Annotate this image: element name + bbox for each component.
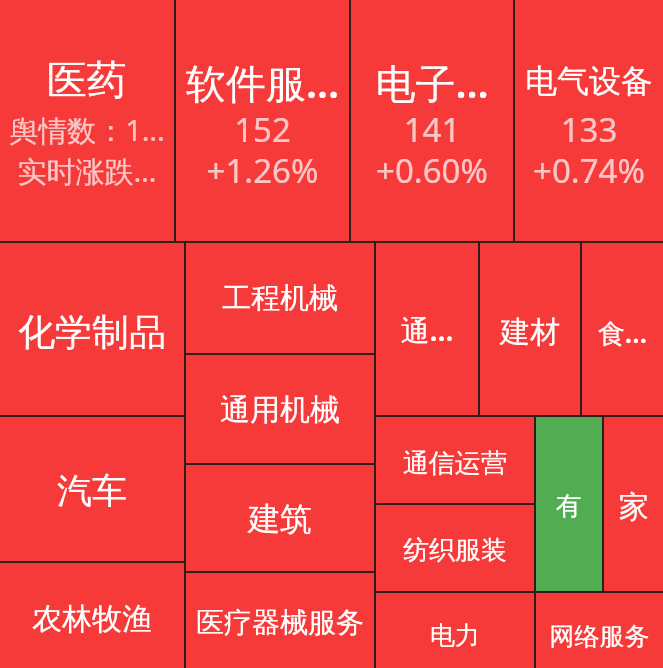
staticText: 食… (584, 314, 661, 351)
button[interactable]: 通… (376, 243, 478, 415)
staticText: 医药 (2, 55, 172, 105)
staticText: 农林牧渔 (2, 600, 182, 638)
staticText: +0.74% (517, 148, 661, 193)
staticText: 纺织服装 (378, 534, 532, 567)
button[interactable]: 医药 (0, 0, 174, 241)
staticText: 软件服… (178, 55, 347, 110)
staticText: 通用机械 (188, 391, 372, 429)
button[interactable]: 电子… (351, 0, 513, 241)
staticText: 有 (538, 490, 600, 523)
staticText: 电力 (378, 620, 532, 651)
staticText: 电子… (353, 55, 511, 110)
button[interactable]: 汽车 (0, 417, 184, 561)
button[interactable]: 通信运营 (376, 417, 534, 503)
button[interactable]: 食… (582, 243, 663, 415)
staticText: 舆情数：1… (2, 110, 172, 150)
staticText: 电气设备 (517, 61, 661, 101)
staticText: 通… (378, 310, 476, 350)
button[interactable]: 农林牧渔 (0, 563, 184, 668)
staticText: 汽车 (2, 469, 182, 513)
staticText: 实时涨跌… (2, 151, 172, 191)
staticText: +0.60% (353, 148, 511, 193)
staticText: 家 (606, 488, 661, 526)
button[interactable]: 工程机械 (186, 243, 374, 353)
staticText: 通信运营 (378, 447, 532, 480)
button[interactable]: 软件服… (176, 0, 349, 241)
button[interactable]: 医疗器械服务 (186, 573, 374, 668)
button[interactable]: 电力 (376, 593, 534, 668)
staticText: 152 (178, 107, 347, 152)
button[interactable]: 建筑 (186, 465, 374, 571)
button[interactable]: 建材 (480, 243, 580, 415)
staticText: 133 (517, 107, 661, 152)
button[interactable]: 电气设备 (515, 0, 663, 241)
staticText: 141 (353, 107, 511, 152)
staticText: 工程机械 (188, 280, 372, 317)
button[interactable]: 化学制品 (0, 243, 184, 415)
staticText: 网络服务 (538, 621, 661, 652)
staticText: 建筑 (188, 499, 372, 539)
button[interactable]: 通用机械 (186, 355, 374, 463)
staticText: 医疗器械服务 (188, 605, 372, 640)
button[interactable]: 家 (604, 417, 663, 591)
staticText: +1.26% (178, 148, 347, 193)
staticText: 化学制品 (2, 309, 182, 356)
staticText: 建材 (482, 313, 578, 351)
button[interactable]: 有 (536, 417, 602, 591)
button[interactable]: 纺织服装 (376, 505, 534, 591)
button[interactable]: 网络服务 (536, 593, 663, 668)
